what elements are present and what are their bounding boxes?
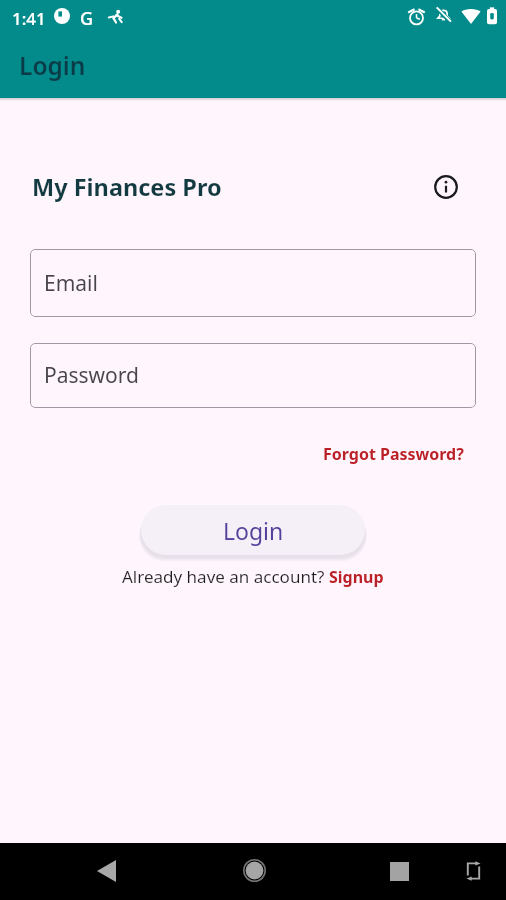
button[interactable]: Forgot Password? — [323, 443, 464, 465]
button[interactable]: Info — [428, 169, 464, 205]
staticText: Password — [44, 361, 139, 390]
button[interactable]: Rotate screen — [451, 849, 495, 893]
button[interactable]: Recent apps — [375, 847, 423, 895]
staticText: My Finances Pro — [32, 171, 222, 203]
staticText: Already have an account? — [122, 565, 329, 588]
staticText: Login — [223, 515, 284, 546]
button[interactable]: Signup — [329, 566, 384, 588]
staticText: Login — [19, 49, 86, 82]
button[interactable]: Email — [30, 249, 476, 317]
staticText: 1:41 — [12, 7, 46, 30]
staticText: Email — [44, 269, 98, 298]
button[interactable]: Home — [230, 846, 278, 894]
button[interactable]: Back — [82, 847, 130, 895]
button[interactable]: Login — [141, 505, 365, 555]
staticText: G — [80, 6, 94, 31]
button[interactable]: Password — [30, 343, 476, 408]
staticText: Signup — [329, 566, 384, 588]
staticText: Forgot Password? — [323, 443, 464, 465]
